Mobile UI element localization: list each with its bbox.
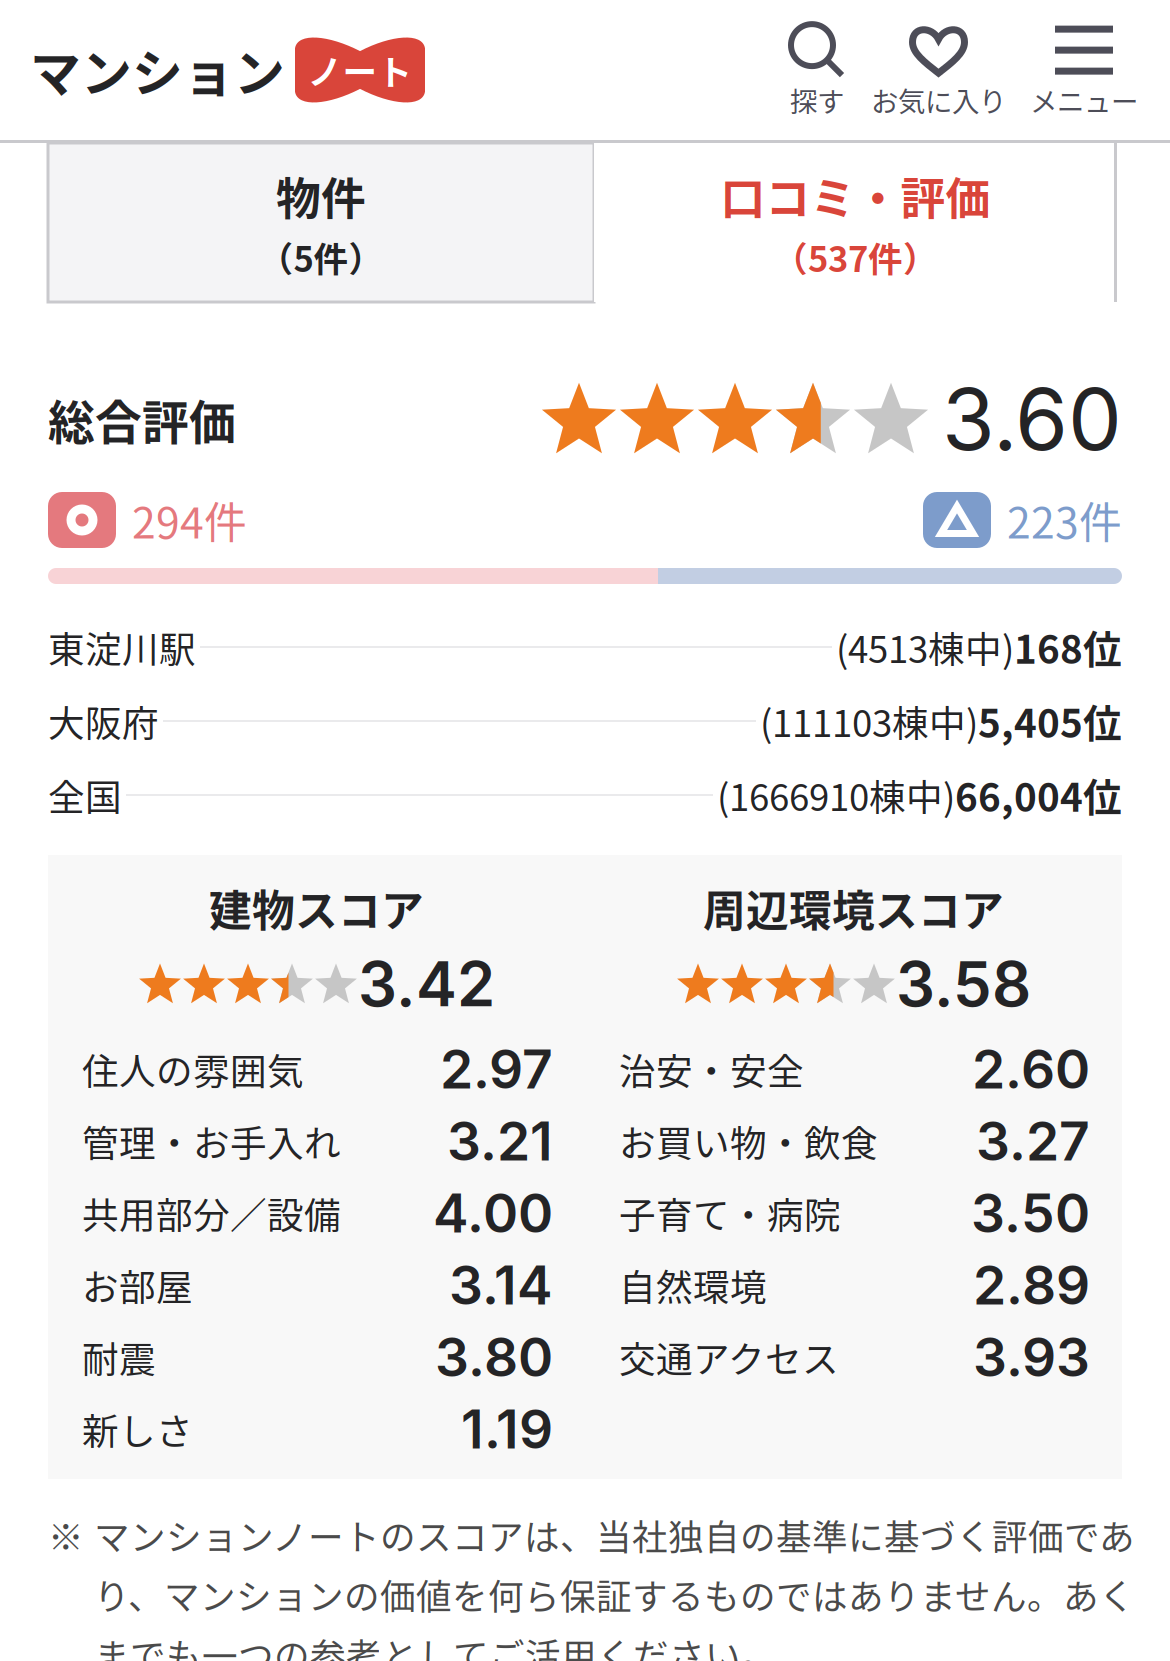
staticText: 大阪府 [48,694,159,747]
staticText: 4.00 [433,1181,553,1245]
staticText: (111103棟中) [760,694,978,747]
button[interactable]: Favorites [859,20,1018,120]
staticText: マンションノートのスコアは、当社独自の基準に基づく評価であ [94,1509,1135,1560]
button[interactable]: Search [775,20,859,120]
staticText: (4513棟中) [836,620,1014,673]
staticText: 3.27 [976,1109,1090,1173]
staticText: (1666910棟中) [717,768,955,821]
staticText: 3.50 [971,1181,1090,1245]
staticText: 66,004位 [955,767,1122,823]
staticText: 交通アクセス [619,1330,839,1383]
staticText: 建物スコア [209,877,424,939]
staticText: 耐震 [82,1330,156,1383]
staticText: （5件） [258,232,383,282]
staticText: 口コミ・評価 [720,163,990,228]
staticText: （537件） [773,232,938,282]
staticText: 3.21 [447,1109,553,1173]
staticText: 2.89 [973,1253,1090,1317]
staticText: ノート [307,45,412,95]
staticText: 3.58 [896,947,1031,1021]
staticText: メニュー [1030,80,1138,120]
staticText: 3.42 [358,947,495,1021]
staticText: 物件 [276,163,366,228]
button[interactable]: 口コミ・評価 [594,143,1117,302]
staticText: 新しさ [82,1402,193,1455]
staticText: り、マンションの価値を何ら保証するものではありません。あく [94,1568,1135,1620]
staticText: 3.60 [942,367,1122,471]
staticText: 2.60 [972,1037,1090,1101]
staticText: ※ [48,1509,84,1560]
staticText: 治安・安全 [619,1042,804,1095]
staticText: お気に入り [871,80,1006,120]
staticText: マンション [30,33,285,107]
staticText: お買い物・飲食 [619,1114,878,1167]
staticText: 223件 [1007,489,1122,551]
staticText: 1.19 [461,1397,553,1461]
staticText: 周辺環境スコア [703,877,1004,939]
staticText: 全国 [48,768,122,821]
staticText: 3.14 [449,1253,553,1317]
staticText: 168位 [1014,619,1122,675]
staticText: までも一つの参考としてご活用ください。 [94,1628,777,1661]
staticText: 管理・お手入れ [82,1114,341,1167]
button[interactable]: 物件 [48,143,594,302]
staticText: 294件 [132,489,247,551]
staticText: 東淀川駅 [48,620,196,673]
staticText: 共用部分／設備 [82,1186,341,1239]
staticText: 5,405位 [978,693,1122,749]
button[interactable]: Menu [1018,20,1150,120]
staticText: 2.97 [440,1037,553,1101]
staticText: 子育て・病院 [619,1186,841,1239]
staticText: 住人の雰囲気 [82,1042,304,1095]
staticText: 3.93 [973,1325,1090,1389]
staticText: 探す [790,80,844,120]
staticText: 総合評価 [48,385,236,453]
staticText: 自然環境 [619,1258,767,1311]
staticText: 3.80 [435,1325,553,1389]
staticText: お部屋 [82,1258,193,1311]
